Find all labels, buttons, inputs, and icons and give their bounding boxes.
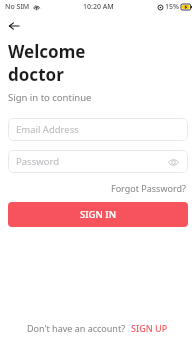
button[interactable]: Back (4, 16, 24, 36)
button[interactable]: Password (8, 150, 188, 173)
staticText: No SIM (5, 2, 30, 12)
button[interactable]: SIGN UP (130, 320, 169, 336)
staticText: Email Address (16, 123, 79, 136)
staticText: SIGN UP (131, 322, 168, 334)
staticText: Sign in to continue (8, 91, 92, 104)
staticText: Password (16, 155, 59, 168)
staticText: Don't have an account? (27, 322, 126, 334)
staticText: Welcome (8, 40, 86, 63)
staticText: Forgot Password? (111, 182, 186, 194)
staticText: 15% (165, 2, 179, 12)
button[interactable]: Show password (166, 155, 180, 169)
button[interactable]: Forgot Password? (109, 180, 188, 196)
button[interactable]: SIGN IN (8, 202, 188, 227)
staticText: 10:20 AM (83, 2, 114, 12)
staticText: doctor (8, 63, 64, 86)
staticText: SIGN IN (80, 208, 117, 221)
button[interactable]: Email Address (8, 118, 188, 141)
